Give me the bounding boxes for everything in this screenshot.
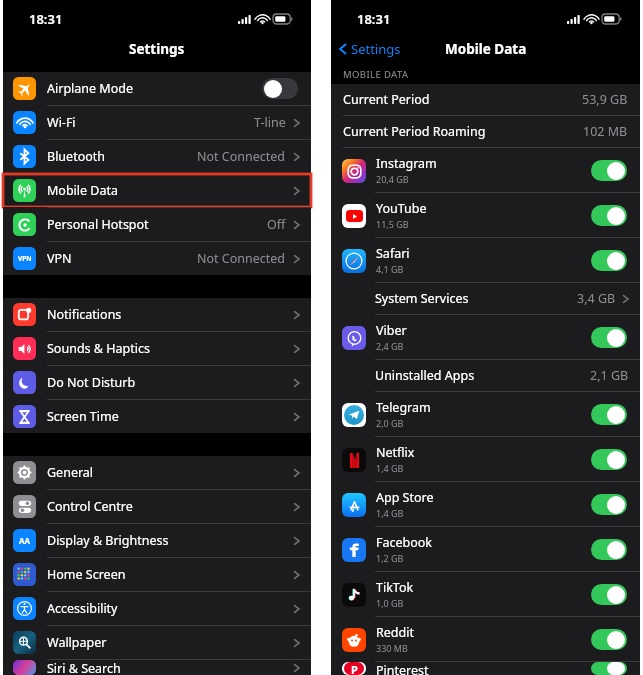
staticText: YouTube [376,200,427,217]
button[interactable]: Toggle on [591,584,627,605]
button[interactable]: Personal Hotspot [3,208,311,241]
button[interactable]: TikTok [331,572,640,616]
staticText: Settings [129,40,185,58]
staticText: Personal Hotspot [47,216,267,233]
staticText: Mobile Data [445,40,527,58]
button[interactable]: Wi-Fi [3,106,311,139]
staticText: Home Screen [47,566,293,583]
button[interactable]: Toggle on [591,494,627,515]
staticText: Notifications [47,306,293,323]
button[interactable]: Reddit [331,617,640,661]
button[interactable]: Bluetooth [3,140,311,173]
staticText: Uninstalled Apps [375,367,590,384]
staticText: 2,0 GB [376,417,404,429]
button[interactable]: Toggle on [591,662,627,675]
staticText: 11,5 GB [376,218,409,230]
staticText: Viber [376,322,407,339]
staticText: Safari [376,245,410,262]
button[interactable]: General [3,456,311,489]
button[interactable]: Control Centre [3,490,311,523]
button[interactable]: System Services [331,283,640,314]
button[interactable]: Netflix [331,437,640,481]
button[interactable]: Sounds & Haptics [3,332,311,365]
button[interactable]: Toggle on [591,449,627,470]
staticText: Screen Time [47,408,293,425]
button[interactable]: Wallpaper [3,626,311,659]
button[interactable]: Settings [339,40,401,58]
staticText: 20,4 GB [376,173,409,185]
button[interactable]: Siri & Search [3,660,311,675]
button[interactable]: Toggle off [262,78,298,99]
button[interactable]: P [331,662,640,675]
button[interactable]: Home Screen [3,558,311,591]
staticText: Settings [351,40,401,58]
button[interactable]: Toggle on [591,205,627,226]
staticText: Off [267,216,286,233]
staticText: Facebook [376,534,433,551]
staticText: 1,2 GB [376,552,404,564]
button[interactable]: App Store [331,482,640,526]
staticText: Wi-Fi [47,114,254,131]
button[interactable]: Mobile Data [3,174,311,207]
staticText: 18:31 [357,10,391,28]
staticText: App Store [376,489,434,506]
button[interactable]: Uninstalled Apps [331,360,640,391]
staticText: AA [19,535,31,546]
staticText: Accessibility [47,600,293,617]
staticText: TikTok [376,579,414,596]
staticText: Not Connected [197,250,286,267]
button[interactable]: Toggle on [591,250,627,271]
staticText: 3,4 GB [577,290,616,307]
staticText: Display & Brightness [47,532,293,549]
button[interactable]: YouTube [331,193,640,237]
staticText: Airplane Mode [47,80,262,97]
staticText: Pinterest [376,662,429,675]
button[interactable]: Toggle on [591,404,627,425]
button[interactable]: Toggle on [591,539,627,560]
button[interactable]: Notifications [3,298,311,331]
button[interactable]: Current Period [331,84,640,115]
button[interactable]: Toggle on [591,629,627,650]
button[interactable]: Telegram [331,392,640,436]
staticText: VPN [18,254,32,263]
staticText: Telegram [376,399,431,416]
staticText: Mobile Data [47,182,293,199]
staticText: Not Connected [197,148,286,165]
staticText: 18:31 [29,10,63,28]
staticText: Bluetooth [47,148,197,165]
button[interactable]: VPN [3,242,311,275]
button[interactable]: Viber [331,315,640,359]
staticText: 1,4 GB [376,462,404,474]
button[interactable]: Current Period Roaming [331,116,640,147]
staticText: VPN [47,250,197,267]
button[interactable]: Screen Time [3,400,311,433]
button[interactable]: AA [3,524,311,557]
staticText: 2,1 GB [590,367,629,384]
button[interactable]: Toggle on [591,327,627,348]
staticText: 1,0 GB [376,597,404,609]
staticText: Wallpaper [47,634,293,651]
button[interactable]: Do Not Disturb [3,366,311,399]
button[interactable]: Safari [331,238,640,282]
staticText: Current Period Roaming [343,123,583,140]
staticText: Sounds & Haptics [47,340,293,357]
staticText: Instagram [376,155,437,172]
staticText: General [47,464,293,481]
button[interactable]: Accessibility [3,592,311,625]
staticText: 53,9 GB [582,91,628,108]
staticText: Netflix [376,444,415,461]
staticText: Control Centre [47,498,293,515]
button[interactable]: Instagram [331,148,640,192]
staticText: Current Period [343,91,582,108]
button[interactable]: Facebook [331,527,640,571]
button[interactable]: Toggle on [591,160,627,181]
staticText: 2,4 GB [376,340,404,352]
staticText: System Services [375,290,577,307]
button[interactable]: Airplane Mode [3,72,311,105]
staticText: Siri & Search [47,660,293,675]
staticText: P [351,662,358,675]
staticText: 102 MB [583,123,628,140]
staticText: 4,1 GB [376,263,404,275]
staticText: 1,4 GB [376,507,404,519]
staticText: T-line [254,114,286,131]
